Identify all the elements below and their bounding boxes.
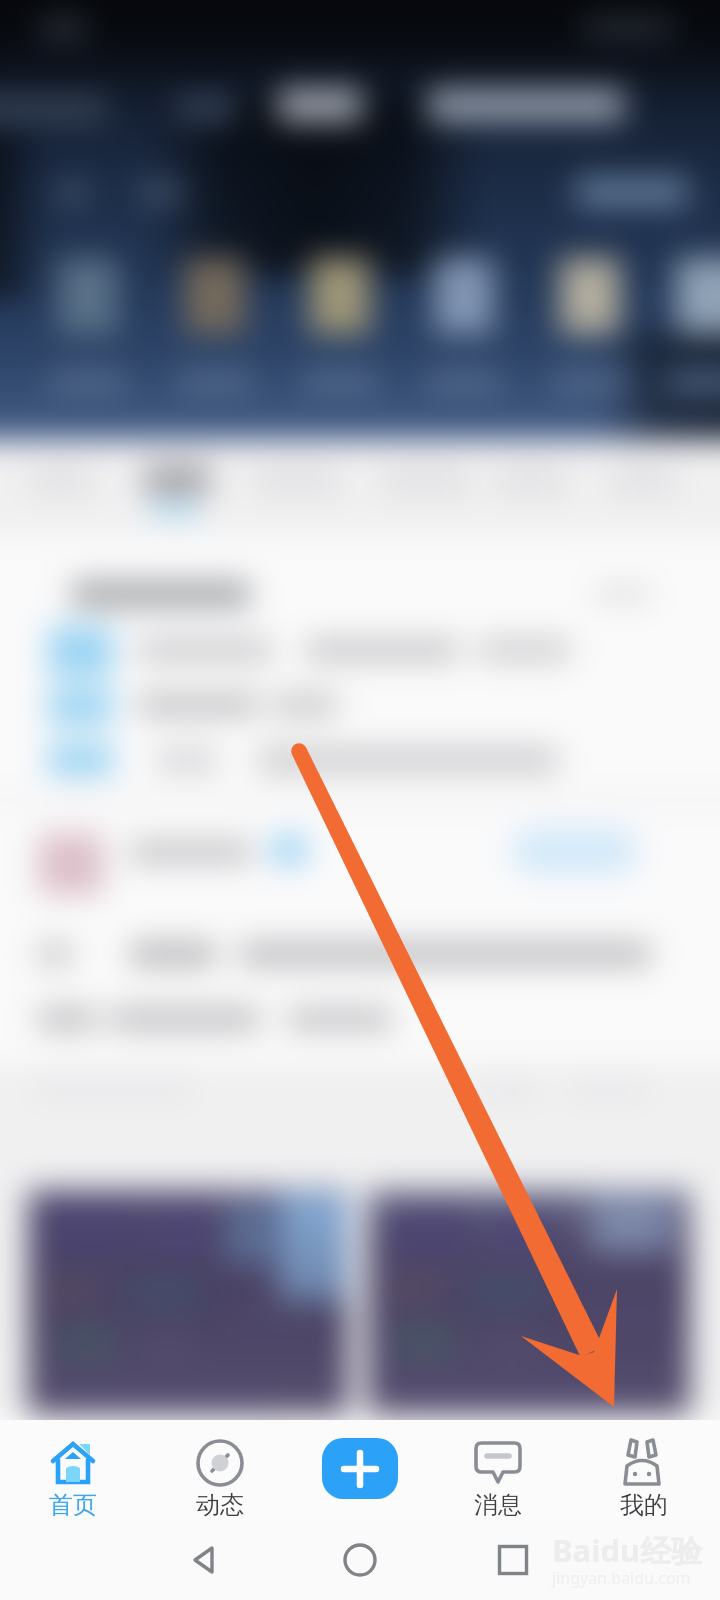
button[interactable]: Recents — [473, 1520, 553, 1600]
button[interactable]: 首页 — [13, 1420, 133, 1520]
staticText: Baidu经验 — [552, 1529, 703, 1571]
staticText: 动态 — [196, 1490, 244, 1520]
staticText: 消息 — [474, 1490, 522, 1520]
staticText: jingyan.baidu.com — [552, 1567, 691, 1589]
button[interactable]: Create post — [300, 1420, 420, 1520]
button[interactable]: 我的 — [584, 1420, 704, 1520]
button[interactable]: 动态 — [160, 1420, 280, 1520]
staticText: 首页 — [49, 1490, 97, 1520]
button[interactable]: 消息 — [438, 1420, 558, 1520]
button[interactable]: Back — [165, 1520, 245, 1600]
button[interactable]: Home — [320, 1520, 400, 1600]
staticText: 我的 — [620, 1490, 668, 1520]
